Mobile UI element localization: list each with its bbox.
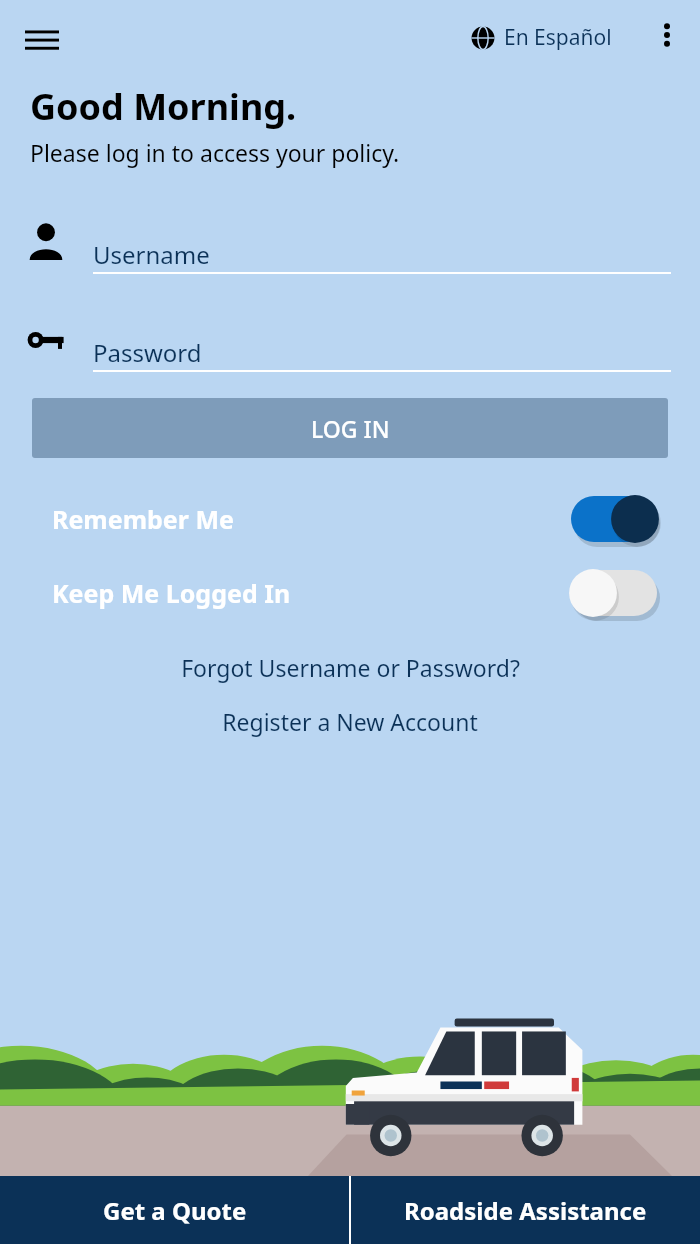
button[interactable]: LOG IN <box>32 398 668 458</box>
staticText: Good Morning. <box>30 82 297 131</box>
button[interactable]: Remember Me <box>0 488 700 550</box>
staticText: Register a New Account <box>222 706 478 737</box>
staticText: Please log in to access your policy. <box>30 137 400 168</box>
button[interactable]: More options <box>640 8 694 62</box>
staticText: Keep Me Logged In <box>52 576 291 610</box>
staticText: Forgot Username or Password? <box>181 652 520 683</box>
button[interactable]: Roadside Assistance <box>351 1176 700 1244</box>
staticText: Password <box>93 336 202 369</box>
staticText: Username <box>93 238 210 271</box>
button[interactable]: En Español <box>470 23 612 52</box>
button[interactable]: Get a Quote <box>0 1176 349 1244</box>
staticText: En Español <box>504 23 612 52</box>
button[interactable]: Keep Me Logged In <box>0 562 700 624</box>
staticText: Get a Quote <box>103 1194 247 1227</box>
staticText: LOG IN <box>311 413 390 444</box>
button[interactable]: Menu <box>16 14 68 66</box>
button[interactable]: Register a New Account <box>0 699 700 743</box>
button[interactable]: Forgot Username or Password? <box>0 645 700 689</box>
staticText: Roadside Assistance <box>404 1194 647 1227</box>
button[interactable]: Password <box>0 308 700 378</box>
button[interactable]: Username <box>0 210 700 280</box>
staticText: Remember Me <box>52 502 234 536</box>
